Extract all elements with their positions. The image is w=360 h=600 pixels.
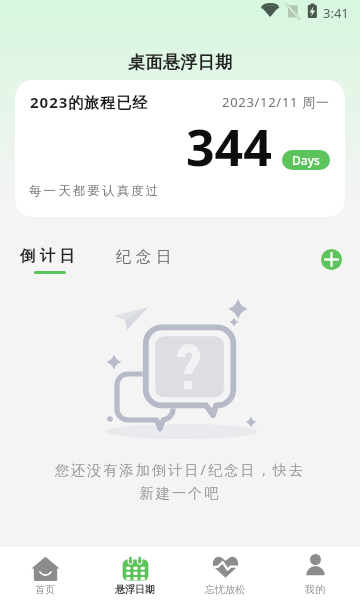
staticText: 每一天都要认真度过 (29, 183, 161, 199)
button[interactable]: 纪念日 (116, 247, 176, 267)
staticText: 忘忧放松 (205, 583, 245, 596)
staticText: 首页 (35, 583, 55, 596)
staticText: 2023的旅程已经 (30, 92, 149, 112)
button[interactable]: 倒计日 (20, 246, 79, 274)
staticText: 悬浮日期 (115, 583, 155, 596)
button[interactable]: 2023的旅程已经 (15, 80, 345, 217)
staticText: 倒计日 (20, 246, 79, 266)
staticText: 您还没有添加倒计日/纪念日，快去 新建一个吧 (0, 460, 360, 502)
button[interactable]: Add (321, 249, 342, 270)
staticText: 桌面悬浮日期 (128, 52, 233, 73)
button[interactable]: 忘忧放松 (180, 547, 270, 600)
staticText: 3:41 (323, 4, 349, 22)
button[interactable]: 我的 (270, 547, 360, 600)
button[interactable]: 悬浮日期 (90, 547, 180, 600)
button[interactable]: 首页 (0, 547, 90, 600)
staticText: 我的 (305, 583, 325, 596)
staticText: 2023/12/11 周一 (222, 93, 330, 111)
staticText: 344 (186, 113, 272, 181)
staticText: 纪念日 (116, 247, 176, 267)
staticText: Days (292, 152, 320, 168)
